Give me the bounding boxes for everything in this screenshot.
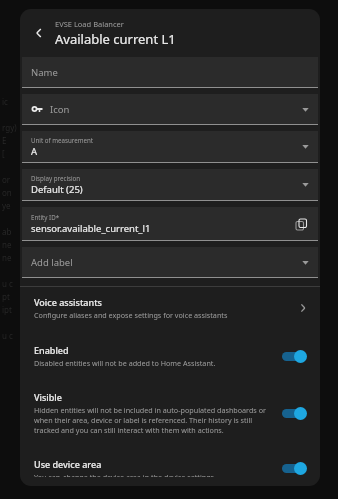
staticText: A [31,145,38,158]
button[interactable]: Toggle [282,349,308,363]
button[interactable]: Enabled [20,335,320,377]
staticText: Use device area [34,458,102,470]
staticText: [ [2,148,5,159]
staticText: Unit of measurement [31,136,94,144]
staticText: or [2,174,11,185]
staticText: You can [34,472,63,477]
button[interactable]: Visible [20,382,320,444]
button[interactable]: Name [22,57,318,88]
staticText: u c [2,330,13,341]
staticText: Available current L1 [55,30,176,48]
button[interactable]: Back [25,19,53,47]
staticText: pt [2,291,10,302]
staticText: Default (25) [31,183,83,196]
staticText: in the device settings [141,472,215,477]
staticText: Hidden entities will not be included in … [34,405,272,435]
button[interactable]: Add label [22,247,318,278]
staticText: Entity ID* [31,213,60,221]
button[interactable]: Voice assistants [20,287,320,329]
button[interactable]: Toggle [282,461,308,475]
staticText: u c [2,278,13,289]
button[interactable]: Icon [22,94,318,125]
staticText: Display precision [31,174,81,182]
button[interactable]: Entity ID* [22,207,318,241]
staticText: ipt [2,304,12,315]
staticText: ab [2,226,12,237]
staticText: Configure aliases and expose settings fo… [34,310,228,320]
staticText: Disabled entities will not be added to H… [34,358,216,368]
staticText: Name [31,66,58,79]
button[interactable]: Unit of measurement [22,131,318,163]
staticText: change the device area [63,472,141,477]
staticText: Enabled [34,344,69,356]
staticText: ic [2,96,8,107]
staticText: E [2,135,7,146]
staticText: Icon [50,103,70,116]
button[interactable]: Use device area [20,449,320,486]
staticText: rgy) [2,122,17,133]
staticText: ne [2,252,12,263]
staticText: Voice assistants [34,296,102,308]
button[interactable]: Copy entity ID [292,215,310,233]
staticText: ne [2,239,12,250]
staticText: EVSE Load Balancer [55,19,124,29]
button[interactable]: Toggle [282,406,308,420]
staticText: on [2,187,12,198]
staticText: sensor.available_current_l1 [31,222,151,235]
button[interactable]: Display precision [22,169,318,201]
staticText: ye [2,200,11,211]
staticText: Visible [34,391,62,403]
staticText: Add label [31,256,73,269]
